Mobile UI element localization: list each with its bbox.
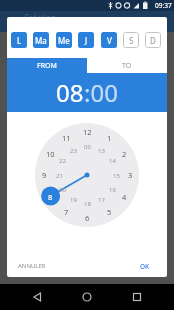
staticText: Création <box>24 12 56 23</box>
staticText: FROM <box>37 61 57 71</box>
staticText: V <box>107 35 112 46</box>
staticText: 3 <box>128 170 133 180</box>
staticText: 23 <box>70 147 77 155</box>
staticText: 08 <box>56 76 84 109</box>
staticText: 18 <box>84 200 91 208</box>
button[interactable]: S <box>123 32 139 48</box>
button[interactable]: J <box>78 32 94 48</box>
staticText: OK <box>140 262 150 271</box>
staticText: 7 <box>64 207 69 217</box>
staticText: 10 <box>46 149 55 159</box>
button[interactable]: FROM <box>7 58 87 73</box>
staticText: 5 <box>107 207 112 217</box>
staticText: 09:37 <box>155 1 172 10</box>
staticText: :00 <box>84 76 118 109</box>
staticText: Me <box>58 35 70 46</box>
staticText: Ma <box>35 35 47 46</box>
staticText: 13 <box>98 147 105 155</box>
staticText: 16 <box>109 186 116 194</box>
staticText: 2 <box>122 149 127 159</box>
button[interactable] <box>0 284 58 310</box>
staticText: 15 <box>113 172 120 180</box>
staticText: 22 <box>59 157 66 165</box>
staticText: 21 <box>56 172 63 180</box>
staticText: 11 <box>62 133 71 143</box>
staticText: J <box>85 35 88 46</box>
staticText: 00 <box>84 143 91 151</box>
staticText: 9 <box>42 170 47 180</box>
staticText: 17 <box>98 196 105 204</box>
button[interactable]: ANNULER <box>11 258 61 274</box>
staticText: 20 <box>59 186 66 194</box>
staticText: 1 <box>107 133 112 143</box>
staticText: 19 <box>70 196 77 204</box>
button[interactable]: Me <box>56 32 72 48</box>
staticText: 8 <box>48 192 53 202</box>
staticText: L <box>17 35 22 46</box>
staticText: TO <box>122 61 132 71</box>
button[interactable] <box>58 284 116 310</box>
staticText: 14 <box>109 157 116 165</box>
button[interactable]: OK <box>129 258 160 274</box>
staticText: ANNULER <box>18 262 46 270</box>
button[interactable]: L <box>11 32 27 48</box>
staticText: S <box>129 35 134 46</box>
button[interactable]: Ma <box>33 32 49 48</box>
staticText: 4 <box>122 192 127 202</box>
button[interactable] <box>116 284 174 310</box>
button[interactable]: V <box>101 32 117 48</box>
button[interactable]: D <box>145 32 161 48</box>
staticText: D <box>150 35 156 46</box>
button[interactable]: TO <box>87 58 167 73</box>
staticText: 12 <box>83 127 92 137</box>
staticText: 6 <box>85 213 90 223</box>
